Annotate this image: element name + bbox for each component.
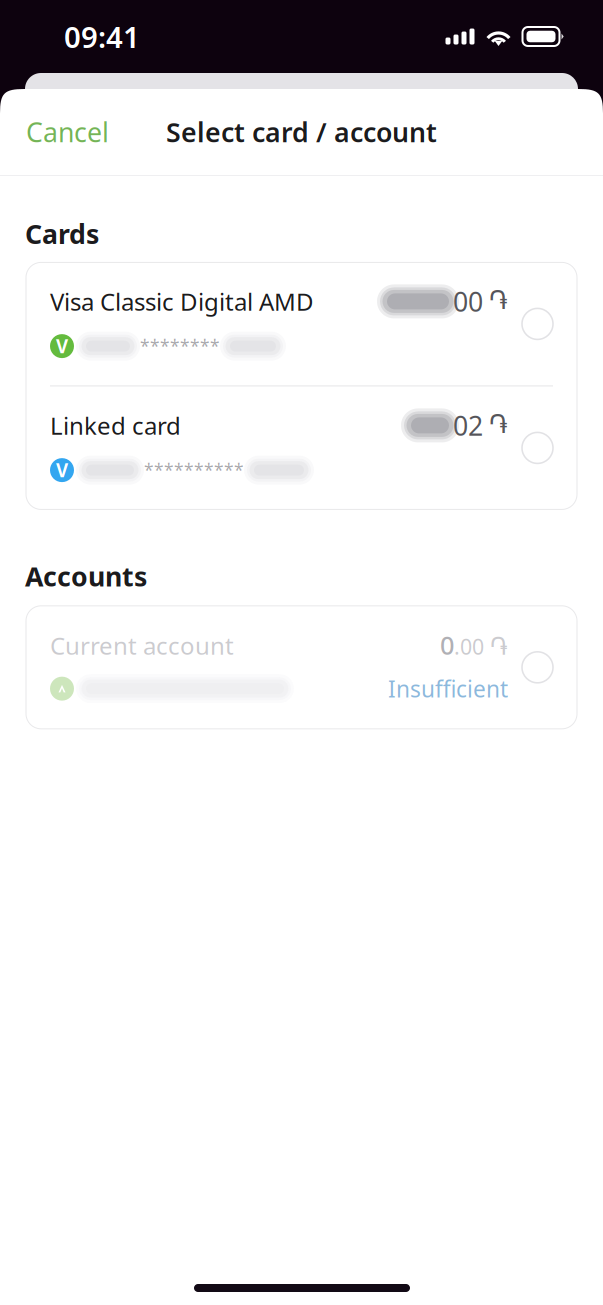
staticText: 02	[453, 408, 483, 443]
staticText: 0	[440, 628, 454, 662]
staticText: 00	[453, 284, 483, 319]
staticText: Cards	[25, 216, 99, 251]
staticText: Cancel	[26, 114, 109, 150]
button[interactable]: Visa Classic Digital AMD	[26, 262, 577, 385]
staticText: 09:41	[64, 17, 140, 56]
button[interactable]: Cancel	[0, 102, 127, 162]
staticText: **********	[144, 459, 244, 482]
staticText: Insufficient	[388, 674, 508, 704]
staticText: V	[56, 458, 68, 482]
staticText: Current account	[50, 629, 234, 661]
staticText: Select card / account	[166, 114, 437, 150]
staticText: ֏	[483, 413, 508, 438]
staticText: Linked card	[50, 409, 181, 441]
staticText: Accounts	[25, 558, 147, 594]
staticText: ֏	[483, 289, 508, 314]
button[interactable]: Current account	[26, 606, 577, 729]
staticText: V	[56, 334, 68, 358]
staticText: Visa Classic Digital AMD	[50, 285, 314, 317]
staticText: ֏	[484, 636, 508, 659]
staticText: .00	[454, 632, 484, 660]
button[interactable]: Linked card	[26, 386, 577, 509]
staticText: ********	[140, 335, 220, 358]
